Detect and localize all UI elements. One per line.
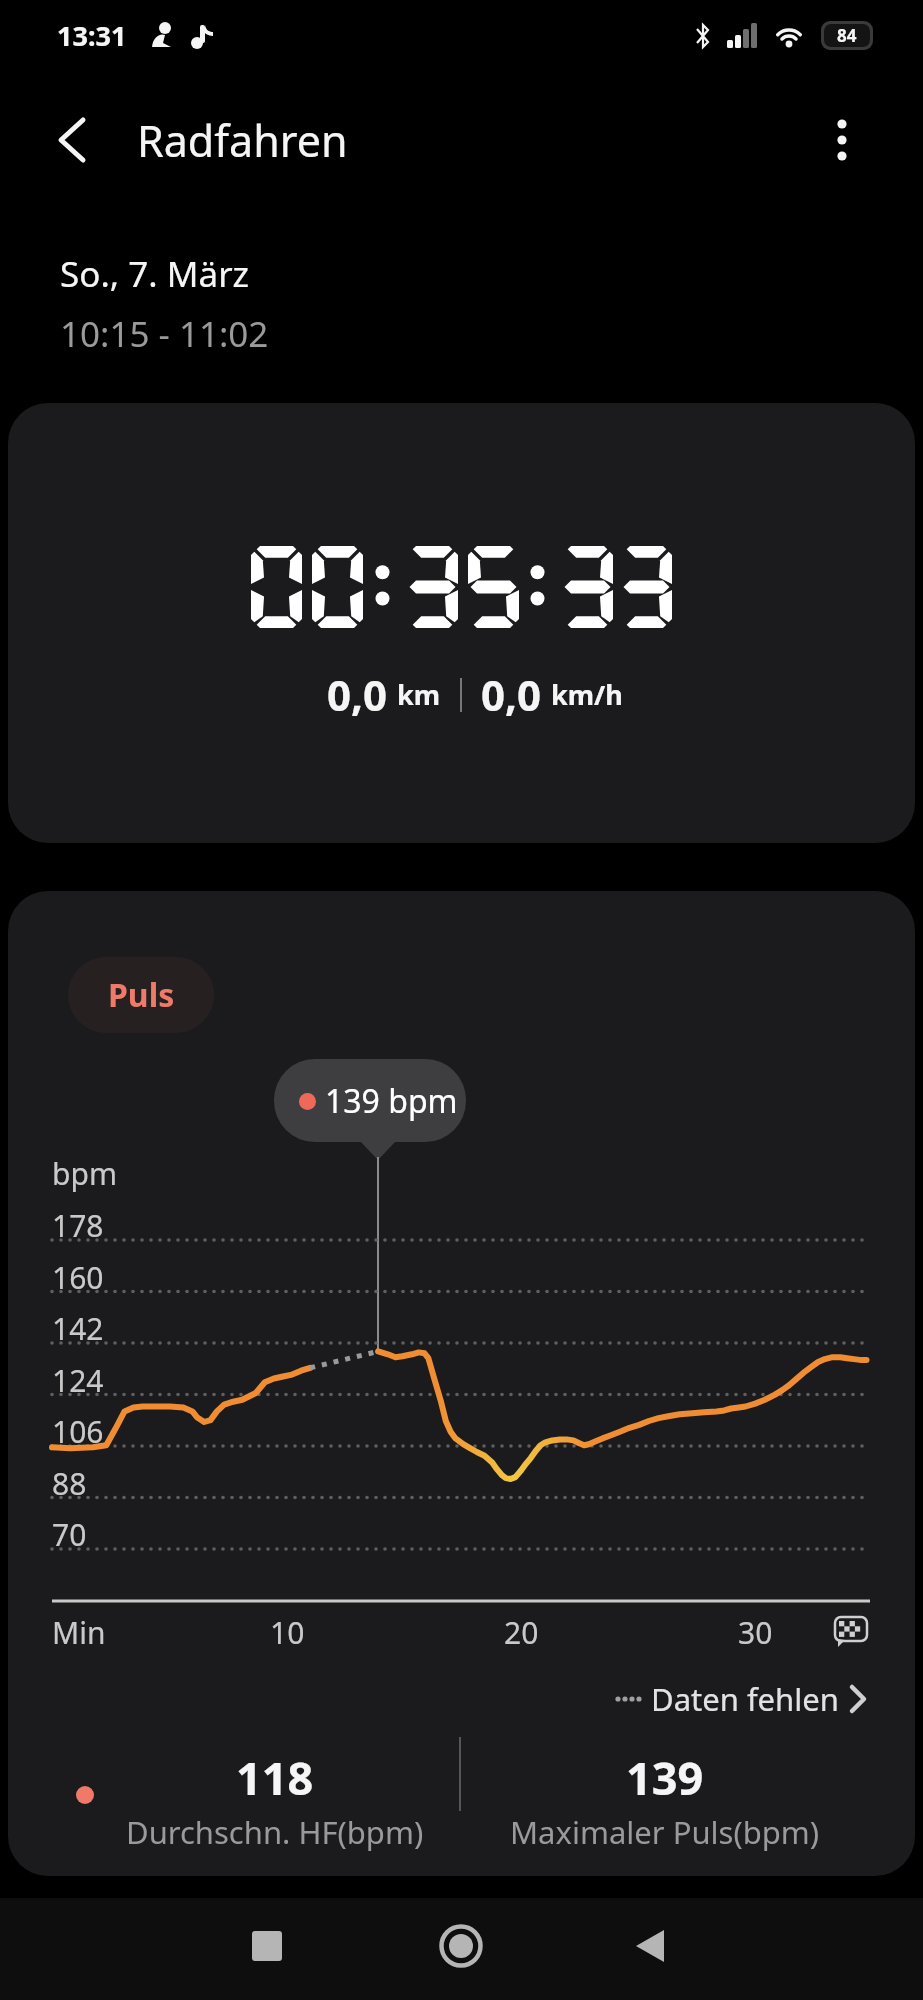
- staticText: 88: [52, 1463, 87, 1504]
- button[interactable]: Daten fehlen: [615, 1678, 867, 1720]
- staticText: 10:15 - 11:02: [60, 310, 269, 358]
- staticText: km: [397, 676, 441, 713]
- button[interactable]: [238, 1931, 296, 1989]
- staticText: 20: [504, 1612, 539, 1653]
- staticText: 124: [52, 1360, 104, 1401]
- staticText: Min: [52, 1612, 106, 1653]
- staticText: 160: [52, 1257, 104, 1298]
- button[interactable]: [810, 108, 874, 172]
- staticText: Maximaler Puls(bpm): [510, 1811, 820, 1853]
- staticText: Daten fehlen: [651, 1678, 839, 1720]
- staticText: 10: [270, 1612, 305, 1653]
- staticText: 0,0: [481, 666, 542, 723]
- button[interactable]: Puls: [68, 957, 214, 1033]
- staticText: 0,0: [327, 666, 388, 723]
- staticText: 84: [837, 24, 857, 47]
- staticText: 13:31: [57, 17, 127, 54]
- staticText: 139: [626, 1747, 704, 1808]
- button[interactable]: [622, 1926, 680, 1984]
- button[interactable]: [40, 108, 104, 172]
- button[interactable]: [432, 1926, 490, 1984]
- staticText: So., 7. März: [60, 250, 250, 298]
- staticText: Radfahren: [137, 111, 348, 170]
- button[interactable]: [835, 1617, 869, 1647]
- staticText: Durchschn. HF(bpm): [126, 1811, 424, 1853]
- staticText: 178: [52, 1205, 104, 1246]
- staticText: 139 bpm: [325, 1079, 458, 1123]
- staticText: 106: [52, 1411, 104, 1452]
- staticText: km/h: [551, 676, 623, 713]
- staticText: 70: [52, 1514, 87, 1555]
- staticText: Puls: [108, 973, 175, 1017]
- staticText: 142: [52, 1308, 104, 1349]
- staticText: bpm: [52, 1153, 117, 1194]
- staticText: 118: [236, 1747, 314, 1808]
- staticText: 30: [738, 1612, 773, 1653]
